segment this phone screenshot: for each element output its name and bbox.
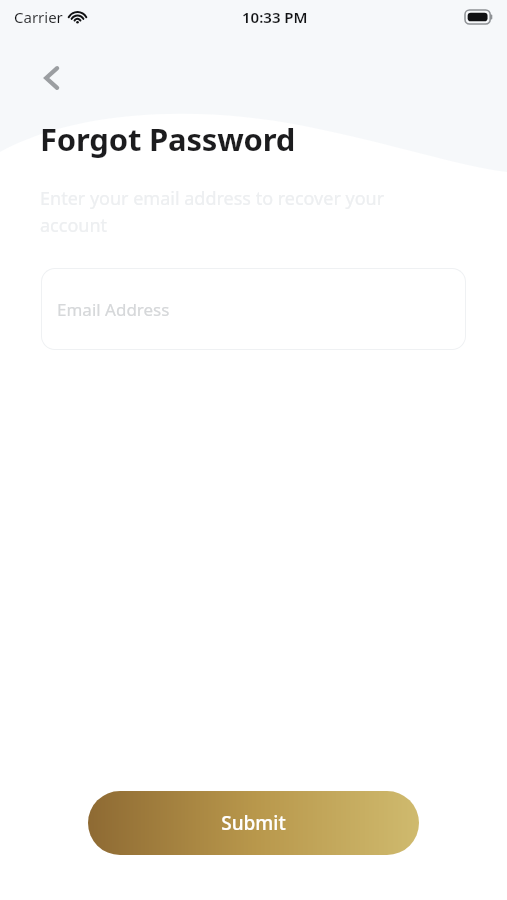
staticText: Submit <box>221 810 286 836</box>
button[interactable]: Submit <box>88 791 419 855</box>
button[interactable]: Back <box>32 56 76 100</box>
staticText: Enter your email address to recover your… <box>40 186 445 237</box>
button[interactable]: Email Address <box>41 268 466 350</box>
staticText: Email Address <box>57 298 170 321</box>
staticText: Forgot Password <box>40 118 296 160</box>
staticText: 10:33 PM <box>242 7 308 27</box>
staticText: Carrier <box>14 7 63 27</box>
